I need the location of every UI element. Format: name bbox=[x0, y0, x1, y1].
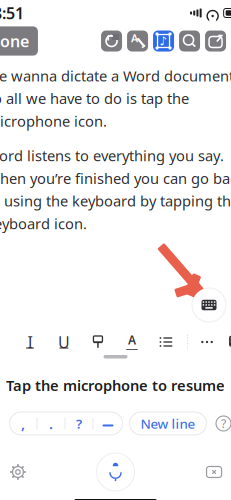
staticText: ♪ bbox=[160, 34, 168, 48]
button[interactable]: Share bbox=[205, 30, 226, 51]
staticText: A bbox=[128, 332, 136, 348]
staticText: I bbox=[27, 331, 32, 353]
button[interactable]: Show keyboard bbox=[192, 288, 226, 322]
staticText: 8:51 bbox=[0, 2, 24, 24]
button[interactable]: Font color bbox=[119, 329, 145, 355]
button[interactable]: Dictation settings bbox=[5, 459, 31, 485]
staticText: New line bbox=[140, 415, 195, 432]
button[interactable]: Select object bbox=[153, 30, 174, 51]
staticText: Word listens to everything you say. When… bbox=[0, 146, 231, 233]
button[interactable]: Search bbox=[179, 30, 200, 51]
button[interactable]: More formatting bbox=[196, 329, 218, 355]
staticText: Done bbox=[0, 30, 29, 52]
button[interactable]: Period bbox=[37, 412, 64, 434]
button[interactable]: Done bbox=[0, 26, 38, 56]
staticText: ? bbox=[76, 415, 82, 432]
button[interactable]: Hide keyboard bbox=[226, 329, 231, 355]
button[interactable]: Space bbox=[93, 412, 122, 434]
staticText: A bbox=[131, 31, 138, 45]
staticText: Tap the microphone to resume bbox=[6, 375, 225, 395]
button[interactable]: Help bbox=[213, 412, 231, 435]
staticText: ? bbox=[221, 415, 226, 431]
staticText: U bbox=[58, 331, 70, 353]
button[interactable]: U bbox=[51, 329, 77, 355]
button[interactable]: Question mark bbox=[65, 412, 92, 434]
button[interactable]: Highlight bbox=[85, 329, 111, 355]
button[interactable]: Delete bbox=[200, 459, 226, 485]
button[interactable]: I bbox=[17, 329, 43, 355]
button[interactable]: Bulleted list bbox=[153, 329, 179, 355]
button[interactable]: Draw bbox=[127, 30, 148, 51]
button[interactable]: Undo bbox=[101, 30, 122, 51]
staticText: , bbox=[21, 414, 25, 433]
button[interactable]: New line bbox=[129, 412, 206, 435]
button[interactable]: Comma bbox=[9, 412, 36, 434]
staticText: . bbox=[49, 414, 53, 433]
button[interactable]: Microphone bbox=[96, 453, 134, 491]
staticText: We wanna dictate a Word document so all … bbox=[0, 66, 231, 131]
